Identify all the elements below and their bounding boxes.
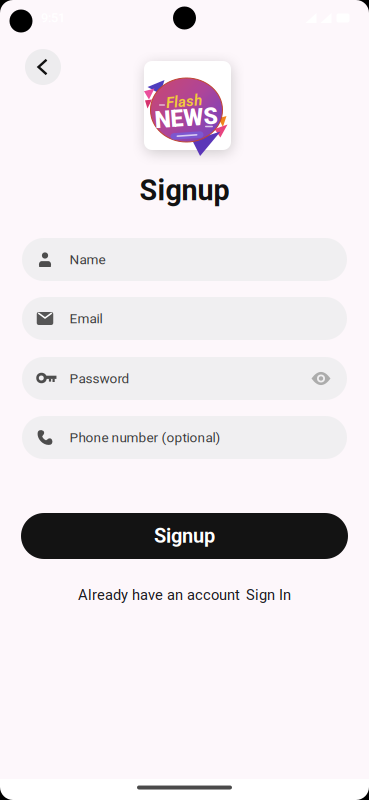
staticText: Signup — [154, 524, 215, 548]
staticText: Name — [69, 251, 105, 267]
button[interactable]: Signup — [21, 513, 348, 559]
button[interactable]: Show password — [309, 366, 333, 390]
button[interactable]: Email — [22, 297, 347, 340]
staticText: Sign In — [246, 586, 291, 604]
staticText: Phone number (optional) — [69, 429, 220, 445]
button[interactable]: Name — [22, 238, 347, 281]
staticText: Flash — [166, 92, 202, 110]
staticText: NEWS — [154, 104, 218, 132]
staticText: Email — [69, 310, 102, 326]
staticText: Password — [69, 370, 129, 386]
button[interactable]: Sign In — [246, 586, 291, 604]
button[interactable]: Password — [22, 357, 347, 400]
staticText: Already have an account — [78, 586, 240, 604]
button[interactable]: Phone number (optional) — [22, 416, 347, 459]
staticText: Signup — [139, 174, 229, 207]
button[interactable]: Back — [25, 49, 61, 85]
